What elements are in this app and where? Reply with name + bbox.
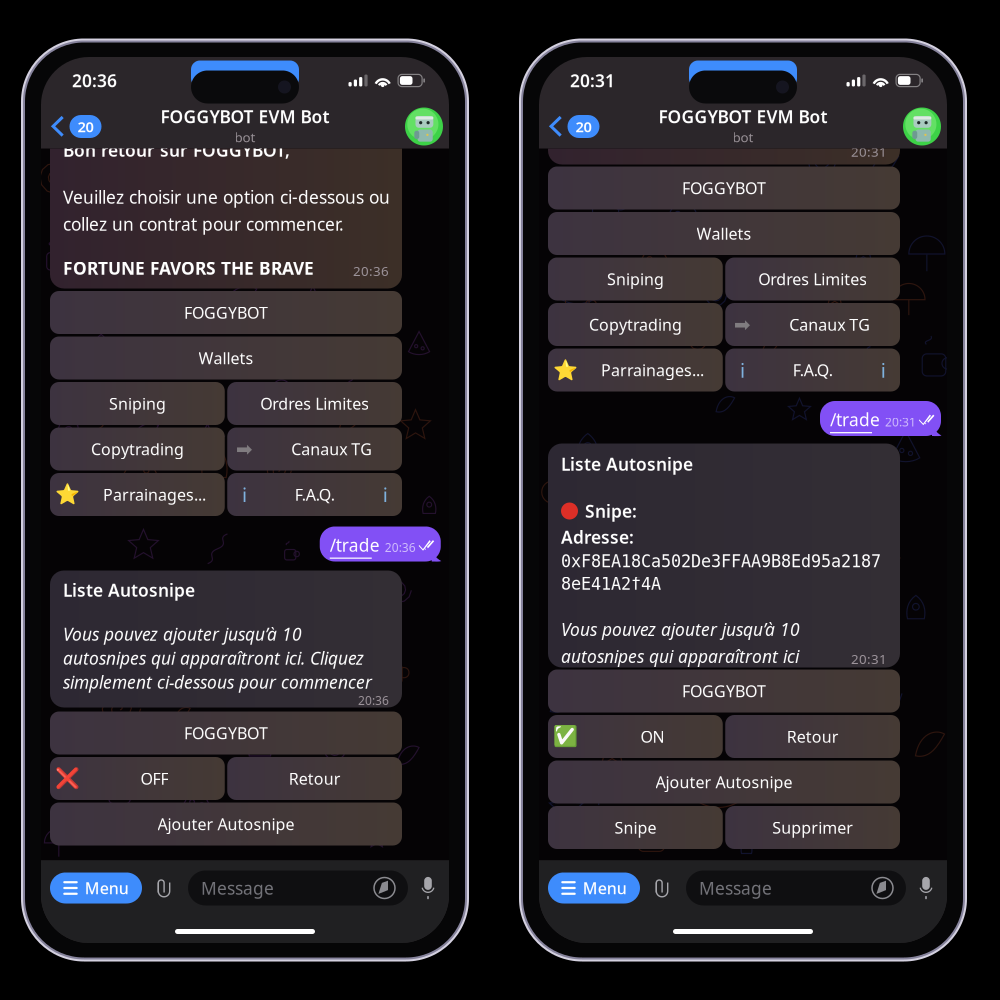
- staticText: 20: [77, 117, 93, 136]
- button[interactable]: ➡: [725, 303, 900, 346]
- staticText: Ajouter Autosnipe: [655, 771, 792, 793]
- button[interactable]: FOGGYBOT: [548, 669, 900, 712]
- button[interactable]: Open bot profile: [405, 107, 449, 145]
- staticText: 8eE41A2f4A: [561, 574, 661, 594]
- button[interactable]: Open bot profile: [903, 107, 947, 145]
- button[interactable]: Record voice message: [420, 876, 436, 900]
- staticText: Vous pouvez ajouter jusqu’à 10: [63, 622, 302, 645]
- staticText: Ajouter Autosnipe: [157, 813, 294, 835]
- staticText: FORTUNE FAVORS THE BRAVE: [63, 257, 314, 280]
- staticText: ℹ: [880, 357, 885, 383]
- staticText: FOGGYBOT: [184, 302, 268, 323]
- button[interactable]: Menu: [50, 872, 142, 903]
- staticText: ✅: [552, 725, 577, 748]
- staticText: Retour: [787, 726, 839, 747]
- staticText: Menu: [85, 877, 129, 899]
- button[interactable]: Sniping: [50, 382, 225, 425]
- button[interactable]: ⭐: [548, 348, 723, 391]
- button[interactable]: Snipe: [548, 806, 723, 849]
- staticText: Parrainages...: [103, 484, 206, 505]
- staticText: Retour: [289, 768, 341, 789]
- staticText: 20:31: [570, 69, 615, 92]
- staticText: ℹ: [740, 357, 745, 383]
- staticText: Canaux TG: [291, 438, 372, 460]
- button[interactable]: 20: [539, 104, 599, 148]
- button[interactable]: Attach file: [153, 875, 175, 900]
- staticText: 20:31: [851, 143, 887, 160]
- staticText: ON: [640, 726, 664, 747]
- staticText: 20:36: [385, 539, 416, 555]
- staticText: 20:31: [851, 650, 887, 668]
- button[interactable]: Copytrading: [50, 427, 225, 470]
- staticText: FOGGYBOT: [682, 680, 766, 702]
- staticText: 0xF8EA18Ca502De3FFAA9B8Ed95a2187: [561, 552, 881, 571]
- staticText: FOGGYBOT: [184, 722, 268, 744]
- button[interactable]: Ordres Limites: [227, 382, 402, 425]
- staticText: F.A.Q.: [295, 484, 335, 505]
- staticText: Parrainages...: [601, 359, 704, 381]
- staticText: Vous pouvez ajouter jusqu’à 10: [561, 618, 800, 641]
- staticText: 20:31: [885, 414, 916, 430]
- staticText: Veuillez choisir une option ci-dessous o…: [63, 185, 390, 208]
- button[interactable]: Ordres Limites: [725, 257, 900, 300]
- staticText: Snipe:: [585, 499, 637, 522]
- button[interactable]: FOGGYBOT: [50, 711, 402, 754]
- staticText: Ordres Limites: [758, 268, 867, 290]
- staticText: F.A.Q.: [793, 359, 833, 381]
- button[interactable]: FOGGYBOT: [50, 291, 402, 334]
- button[interactable]: Retour: [725, 715, 900, 758]
- staticText: simplement ci-dessous pour commencer: [63, 670, 372, 693]
- button[interactable]: Menu: [548, 872, 640, 903]
- button[interactable]: FOGGYBOT: [548, 166, 900, 209]
- staticText: autosnipes qui apparaîtront ici. Cliquez: [63, 646, 364, 669]
- button[interactable]: 20: [41, 104, 101, 148]
- staticText: 20: [575, 117, 591, 136]
- staticText: 20:36: [358, 692, 389, 708]
- button[interactable]: Sniping: [548, 257, 723, 300]
- button[interactable]: Record voice message: [918, 876, 934, 900]
- staticText: FOGGYBOT EVM Bot: [160, 105, 329, 128]
- staticText: ℹ: [382, 481, 387, 508]
- staticText: collez un contrat pour commencer.: [63, 212, 344, 235]
- staticText: Canaux TG: [789, 314, 870, 335]
- button[interactable]: ℹ: [725, 348, 900, 391]
- staticText: Liste Autosnipe: [63, 578, 195, 601]
- button[interactable]: Wallets: [50, 336, 402, 379]
- staticText: bot: [732, 128, 753, 146]
- button[interactable]: ℹ: [227, 473, 402, 516]
- button[interactable]: Wallets: [548, 212, 900, 255]
- staticText: 20:36: [72, 69, 117, 92]
- staticText: ❌: [54, 767, 79, 790]
- button[interactable]: Ajouter Autosnipe: [50, 802, 402, 845]
- button[interactable]: Stickers: [374, 877, 395, 898]
- button[interactable]: Supprimer: [725, 806, 900, 849]
- staticText: Bon retour sur FOGGYBOT,: [63, 138, 290, 161]
- button[interactable]: Copytrading: [548, 303, 723, 346]
- staticText: Wallets: [198, 347, 253, 369]
- button[interactable]: Stickers: [872, 877, 893, 898]
- button[interactable]: Retour: [227, 757, 402, 800]
- button[interactable]: ➡: [227, 427, 402, 470]
- staticText: Wallets: [696, 223, 751, 244]
- staticText: ⭐: [54, 483, 79, 506]
- button[interactable]: ✅: [548, 715, 723, 758]
- staticText: Copytrading: [91, 438, 184, 460]
- button[interactable]: Attach file: [651, 875, 673, 900]
- staticText: ➡: [236, 438, 253, 460]
- staticText: FOGGYBOT EVM Bot: [658, 105, 827, 128]
- staticText: Sniping: [607, 268, 664, 290]
- staticText: 20:36: [353, 262, 389, 280]
- staticText: Liste Autosnipe: [561, 452, 693, 475]
- button[interactable]: ⭐: [50, 473, 225, 516]
- button[interactable]: Ajouter Autosnipe: [548, 760, 900, 803]
- staticText: Sniping: [109, 393, 166, 414]
- button[interactable]: ❌: [50, 757, 225, 800]
- staticText: OFF: [140, 768, 168, 789]
- staticText: Message: [699, 876, 772, 899]
- staticText: Supprimer: [772, 817, 853, 838]
- staticText: /trade: [830, 408, 880, 431]
- staticText: /trade: [330, 533, 380, 556]
- staticText: ⭐: [552, 359, 577, 381]
- staticText: Ordres Limites: [260, 393, 369, 414]
- staticText: autosnipes qui apparaîtront ici: [561, 645, 799, 668]
